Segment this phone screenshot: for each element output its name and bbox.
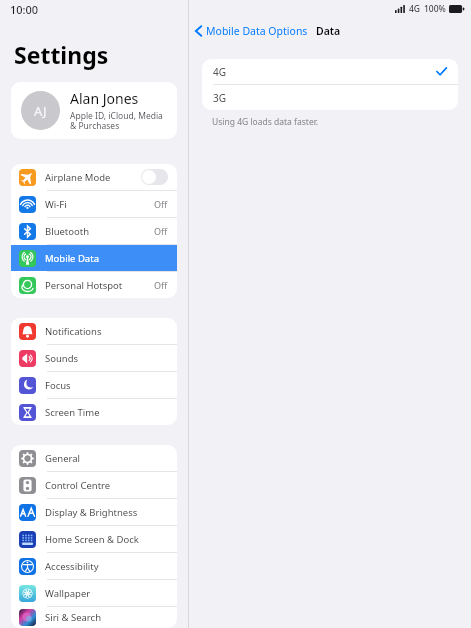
staticText: Mobile Data Options [206,24,308,38]
staticText: Display & Brightness [45,506,168,519]
staticText: Wi-Fi [45,198,154,211]
button[interactable]: Display & Brightness [11,499,177,525]
staticText: Wallpaper [45,587,168,600]
staticText: Using 4G loads data faster. [212,116,319,128]
button[interactable]: Bluetooth [11,218,177,244]
staticText: Screen Time [45,406,168,419]
staticText: Notifications [45,325,168,338]
button[interactable]: Notifications [11,318,177,344]
button[interactable]: Airplane Mode toggle [141,169,168,185]
button[interactable]: Accessibility [11,553,177,579]
button[interactable]: Personal Hotspot [11,272,177,298]
staticText: Off [154,279,168,291]
staticText: Control Centre [45,479,168,492]
staticText: 4G [213,65,436,79]
staticText: Accessibility [45,560,168,573]
staticText: Sounds [45,352,168,365]
staticText: Data [316,24,341,38]
other: Back [195,25,202,37]
staticText: Settings [14,39,109,70]
staticText: Focus [45,379,168,392]
button[interactable]: Wi-Fi [11,191,177,217]
staticText: Alan Jones [70,89,139,108]
button[interactable]: Control Centre [11,472,177,498]
button[interactable]: 3G [202,85,458,110]
staticText: Personal Hotspot [45,279,154,292]
staticText: 100% [424,3,446,15]
staticText: Home Screen & Dock [45,533,168,546]
staticText: 3G [213,91,447,105]
staticText: General [45,452,168,465]
staticText: Bluetooth [45,225,154,238]
staticText: Airplane Mode [45,171,141,184]
staticText: Apple ID, iCloud, Media & Purchases [70,110,163,132]
button[interactable]: Home Screen & Dock [11,526,177,552]
button[interactable]: Back [195,24,308,38]
button[interactable]: Screen Time [11,399,177,425]
staticText: Off [154,225,168,237]
button[interactable]: Sounds [11,345,177,371]
button[interactable]: AJ [11,82,177,139]
button[interactable]: 4G [202,59,458,84]
staticText: Mobile Data [45,252,168,265]
button[interactable]: Mobile Data [11,245,177,271]
button[interactable]: Wallpaper [11,580,177,606]
button[interactable]: Focus [11,372,177,398]
button[interactable]: Airplane Mode [11,164,177,190]
staticText: Off [154,198,168,210]
button[interactable]: General [11,445,177,471]
staticText: AJ [34,102,47,120]
staticText: Siri & Search [45,611,168,624]
staticText: 4G [409,3,421,15]
button[interactable]: Siri & Search [11,607,177,628]
staticText: 10:00 [10,2,39,17]
